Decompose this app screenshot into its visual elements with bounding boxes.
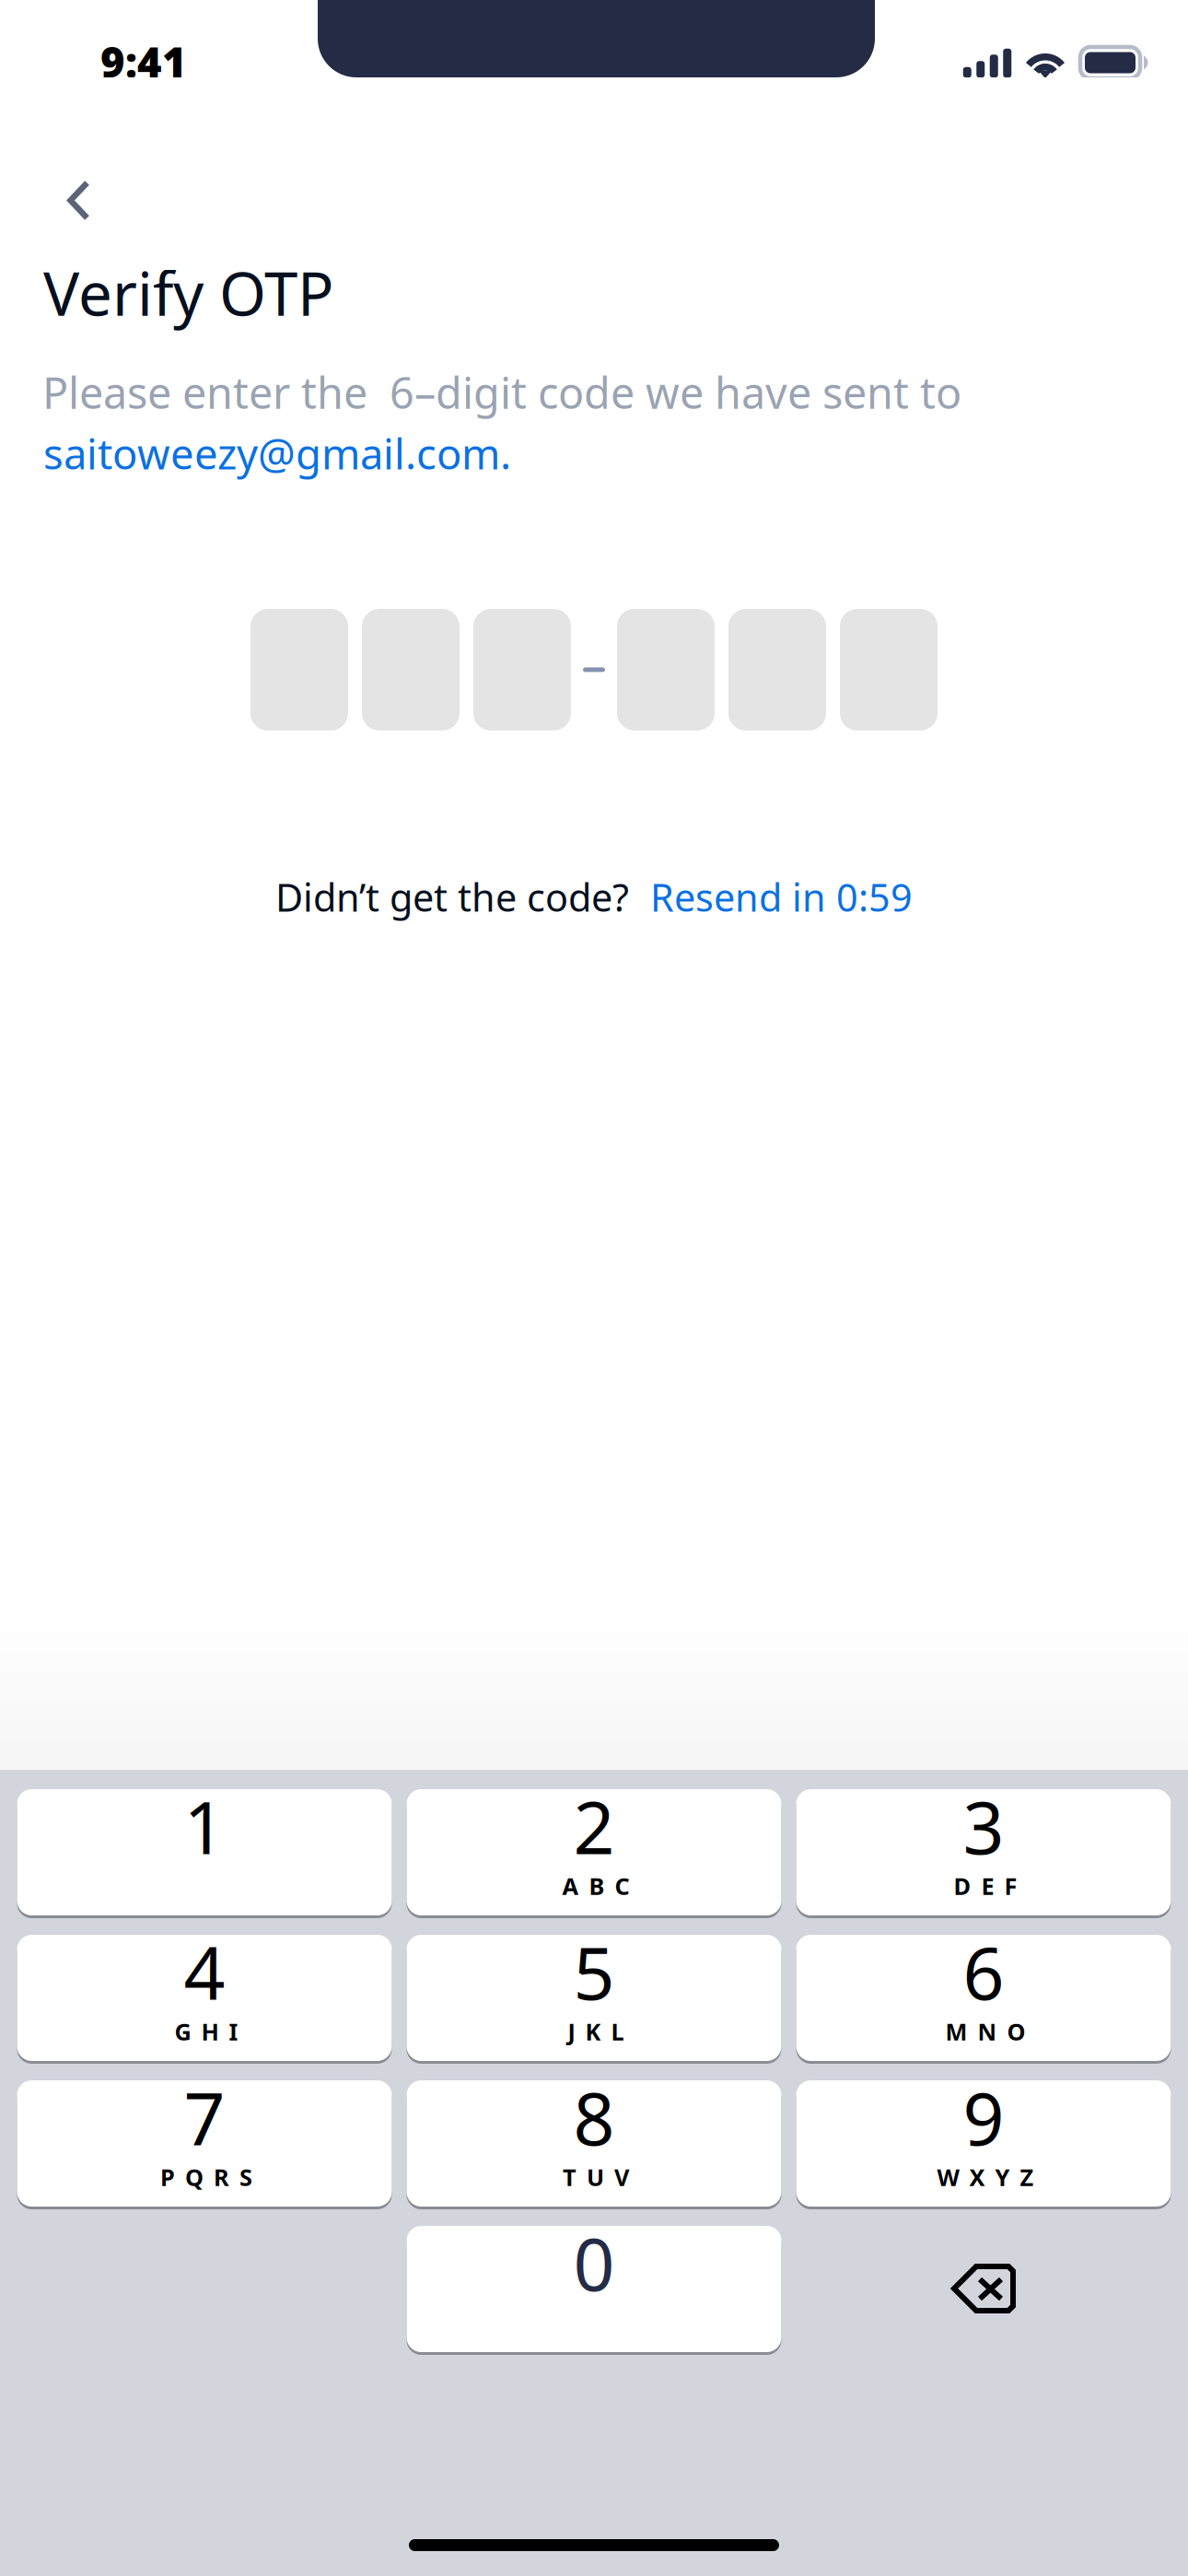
staticText: PQRS <box>160 2162 252 2193</box>
staticText: Resend in 0:59 <box>650 871 913 922</box>
staticText: 7 <box>184 2069 225 2165</box>
button[interactable]: Digit 2 <box>362 609 460 731</box>
staticText: 3 <box>963 1778 1004 1874</box>
button[interactable]: 8 <box>407 2080 781 2207</box>
staticText: 4 <box>184 1924 225 2020</box>
staticText: WXYZ <box>937 2162 1034 2193</box>
staticText: Please enter the 6–digit code we have se… <box>42 364 961 421</box>
button[interactable]: saitoweezy@gmail.com. <box>0 425 511 481</box>
button[interactable]: Digit 3 <box>473 609 571 731</box>
button[interactable]: 7 <box>17 2080 392 2207</box>
button[interactable]: Digit 5 <box>728 609 826 731</box>
staticText: TUV <box>563 2162 629 2193</box>
staticText: ABC <box>562 1870 629 1901</box>
button[interactable]: Digit 4 <box>617 609 715 731</box>
button[interactable]: 0 <box>407 2226 781 2352</box>
staticText: 9 <box>963 2069 1004 2165</box>
staticText: 9:41 <box>100 34 187 89</box>
staticText: DEF <box>954 1870 1017 1901</box>
staticText: GHI <box>175 2016 238 2047</box>
button[interactable]: 2 <box>407 1789 781 1915</box>
staticText: 0 <box>573 2215 615 2311</box>
staticText: 1 <box>184 1778 225 1874</box>
button[interactable]: Resend in 0:59 <box>650 871 913 922</box>
staticText: saitoweezy@gmail.com. <box>43 425 511 481</box>
staticText: Didn’t get the code? <box>275 871 629 922</box>
button[interactable]: 9 <box>796 2080 1171 2207</box>
button[interactable]: 6 <box>796 1935 1171 2061</box>
staticText: JKL <box>568 2016 624 2047</box>
button[interactable]: 4 <box>17 1935 392 2061</box>
staticText: MNO <box>945 2016 1025 2047</box>
staticText: Verify OTP <box>43 252 334 332</box>
button[interactable]: 5 <box>407 1935 781 2061</box>
button[interactable]: Digit 6 <box>840 609 938 731</box>
button[interactable]: Back <box>0 180 1188 221</box>
staticText: 2 <box>573 1778 615 1874</box>
button[interactable]: Digit 1 <box>250 609 348 731</box>
button[interactable]: 1 <box>17 1789 392 1915</box>
button[interactable]: Delete <box>796 2226 1171 2352</box>
staticText: 5 <box>573 1924 615 2020</box>
staticText: 6 <box>963 1924 1004 2020</box>
staticText: 8 <box>573 2069 615 2165</box>
button[interactable]: 3 <box>796 1789 1171 1915</box>
